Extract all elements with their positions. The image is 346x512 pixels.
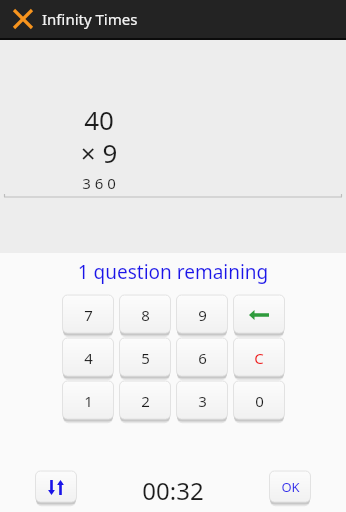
button[interactable]: C — [233, 338, 285, 379]
staticText: 1 — [84, 391, 93, 411]
button[interactable]: 4 — [62, 338, 114, 379]
staticText: 3 — [198, 391, 207, 411]
button[interactable]: 8 — [119, 295, 171, 336]
staticText: 40 — [0, 102, 198, 137]
staticText: 7 — [84, 305, 93, 325]
staticText: 3 6 0 — [0, 173, 198, 193]
staticText: 8 — [141, 305, 150, 325]
staticText: C — [254, 348, 264, 368]
button[interactable]: 6 — [176, 338, 228, 379]
staticText: × 9 — [0, 135, 198, 170]
staticText: 5 — [141, 348, 150, 368]
button[interactable]: Swap — [35, 471, 77, 505]
staticText: Infinity Times — [42, 9, 138, 29]
staticText: 9 — [198, 305, 207, 325]
button[interactable]: 5 — [119, 338, 171, 379]
button[interactable]: OK — [269, 471, 311, 505]
staticText: 00:32 — [0, 474, 346, 507]
staticText: 2 — [141, 391, 150, 411]
staticText: 4 — [84, 348, 93, 368]
button[interactable]: 0 — [233, 381, 285, 422]
staticText: 6 — [198, 348, 207, 368]
button[interactable]: 2 — [119, 381, 171, 422]
button[interactable]: 3 — [176, 381, 228, 422]
staticText: 1 question remaining — [0, 259, 346, 285]
button[interactable]: 7 — [62, 295, 114, 336]
button[interactable]: Backspace — [233, 295, 285, 336]
button[interactable]: 1 — [62, 381, 114, 422]
staticText: OK — [281, 478, 300, 496]
staticText: 0 — [255, 391, 264, 411]
button[interactable]: 9 — [176, 295, 228, 336]
